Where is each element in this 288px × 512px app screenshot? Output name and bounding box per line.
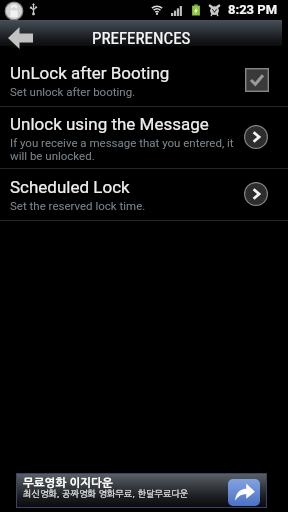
button[interactable]: Open advertisement: [228, 479, 260, 506]
staticText: will be unlocked.: [10, 149, 95, 162]
staticText: 무료영화 이지다운: [23, 477, 113, 488]
staticText: 최신영화, 공짜영화 영화무료, 한달무료다운: [23, 489, 189, 498]
staticText: UnLock after Booting: [10, 63, 170, 83]
button[interactable]: 무료영화 이지다운: [17, 474, 266, 507]
staticText: PREFERENCES: [92, 28, 191, 48]
button[interactable]: UnLock after Booting: [0, 48, 288, 106]
button[interactable]: Unlock using the Message: [0, 107, 288, 168]
button[interactable]: Unlock after booting checkbox: [245, 68, 269, 92]
button[interactable]: Back: [8, 27, 33, 49]
staticText: Scheduled Lock: [10, 177, 130, 197]
staticText: 8:23 PM: [228, 2, 278, 17]
staticText: If you receive a message that you entere…: [10, 136, 234, 149]
staticText: Unlock using the Message: [10, 114, 209, 134]
button[interactable]: Scheduled Lock: [0, 169, 288, 220]
staticText: Set unlock after booting.: [10, 85, 136, 98]
staticText: Set the reserved lock time.: [10, 199, 146, 212]
